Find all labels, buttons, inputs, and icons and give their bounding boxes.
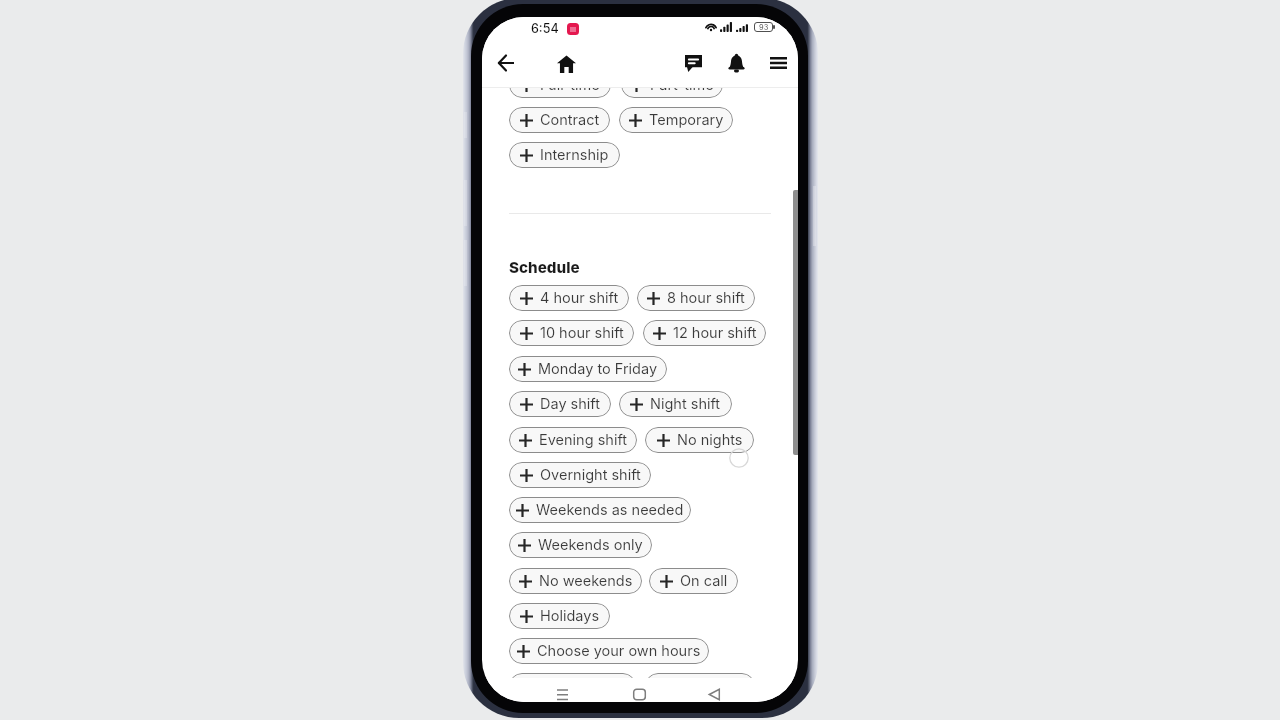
- staticText: Weekends as needed: [536, 501, 684, 519]
- button[interactable]: No weekends: [509, 568, 642, 594]
- staticText: 12 hour shift: [673, 324, 757, 342]
- button[interactable]: Evening shift: [509, 427, 637, 453]
- button[interactable]: Notifications: [716, 43, 756, 83]
- button[interactable]: Home: [616, 678, 663, 702]
- button[interactable]: 12 hour shift: [643, 320, 766, 346]
- button[interactable]: 10 hour shift: [509, 320, 634, 346]
- staticText: Evening shift: [539, 431, 628, 449]
- staticText: On call: [680, 572, 728, 590]
- button[interactable]: Part-time: [621, 72, 723, 98]
- staticText: Contract: [540, 111, 600, 129]
- staticText: 4 hour shift: [540, 289, 619, 307]
- button[interactable]: Holidays: [509, 603, 610, 629]
- staticText: No weekends: [539, 572, 633, 590]
- button[interactable]: Overnight shift: [509, 462, 651, 488]
- button[interactable]: Day shift: [509, 391, 611, 417]
- button[interactable]: Choose your own hours: [509, 638, 709, 664]
- button[interactable]: Back: [691, 678, 738, 702]
- staticText: 8 hour shift: [667, 289, 745, 307]
- staticText: Night shift: [650, 395, 721, 413]
- staticText: Temporary: [649, 111, 724, 129]
- staticText: 93: [759, 23, 769, 32]
- button[interactable]: Menu: [758, 43, 798, 83]
- button[interactable]: Monday to Friday: [509, 356, 667, 382]
- button[interactable]: Night shift: [619, 391, 732, 417]
- staticText: Full-time: [540, 76, 600, 94]
- staticText: Day shift: [540, 395, 600, 413]
- button[interactable]: Day off: [509, 673, 636, 699]
- staticText: 10 hour shift: [540, 324, 624, 342]
- staticText: 6:54: [531, 21, 559, 36]
- staticText: Schedule: [509, 258, 580, 276]
- button[interactable]: Back: [486, 43, 526, 83]
- button[interactable]: Recent apps: [539, 678, 586, 702]
- button[interactable]: Weekends as needed: [509, 497, 691, 523]
- staticText: Day off: [558, 677, 608, 695]
- staticText: Internship: [540, 146, 609, 164]
- staticText: Rotating: [682, 677, 739, 695]
- staticText: Choose your own hours: [537, 642, 701, 660]
- button[interactable]: Weekends only: [509, 532, 652, 558]
- button[interactable]: Temporary: [619, 107, 733, 133]
- staticText: Part-time: [650, 76, 714, 94]
- button[interactable]: No nights: [645, 427, 754, 453]
- button[interactable]: Internship: [509, 142, 620, 168]
- button[interactable]: Full-time: [509, 72, 611, 98]
- staticText: Monday to Friday: [538, 360, 658, 378]
- button[interactable]: 4 hour shift: [509, 285, 629, 311]
- button[interactable]: Home: [546, 44, 586, 84]
- button[interactable]: On call: [649, 568, 738, 594]
- staticText: Weekends only: [538, 536, 643, 554]
- button[interactable]: Rotating: [645, 673, 755, 699]
- button[interactable]: Messages: [673, 43, 713, 83]
- button[interactable]: Contract: [509, 107, 610, 133]
- staticText: Overnight shift: [540, 466, 641, 484]
- staticText: No nights: [677, 431, 743, 449]
- staticText: Holidays: [540, 607, 600, 625]
- button[interactable]: 8 hour shift: [637, 285, 755, 311]
